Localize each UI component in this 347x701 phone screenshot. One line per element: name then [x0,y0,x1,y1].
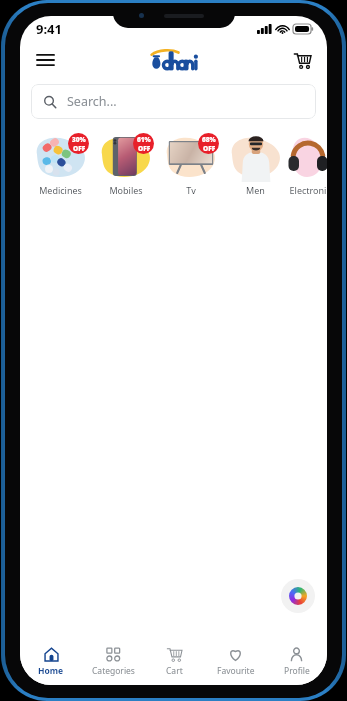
button[interactable] [146,49,202,71]
staticText: Men [246,184,265,196]
staticText: Tv [186,184,196,196]
staticText: Electronics [289,184,327,196]
staticText: Favourite [217,665,255,677]
staticText: Categories [92,665,135,677]
button[interactable]: Categories [82,639,144,685]
button[interactable]: 30% [29,132,92,196]
button[interactable]: Cart [285,43,319,77]
button[interactable]: Cart [144,639,205,685]
button[interactable]: Home [20,639,82,685]
staticText: Profile [284,665,310,677]
button[interactable]: Electronics [289,132,327,196]
button[interactable]: Search... [31,84,316,119]
staticText: Cart [166,665,183,677]
staticText: OFF [138,144,151,153]
staticText: Medicines [39,184,82,196]
button[interactable]: Profile [266,639,327,685]
button[interactable]: Menu [28,43,62,77]
staticText: Mobiles [109,184,143,196]
staticText: OFF [73,144,86,153]
staticText: OFF [203,144,216,153]
staticText: 9:41 [36,20,62,38]
button[interactable]: Men [224,132,287,196]
button[interactable]: Favourite [205,639,266,685]
button[interactable]: 68% [159,132,222,196]
staticText: Home [38,665,64,677]
staticText: 61% [137,135,151,144]
button[interactable]: 61% [94,132,157,196]
button[interactable]: Assistant [281,579,315,613]
staticText: 68% [202,135,216,144]
staticText: Search... [67,93,117,110]
staticText: 30% [72,135,86,144]
